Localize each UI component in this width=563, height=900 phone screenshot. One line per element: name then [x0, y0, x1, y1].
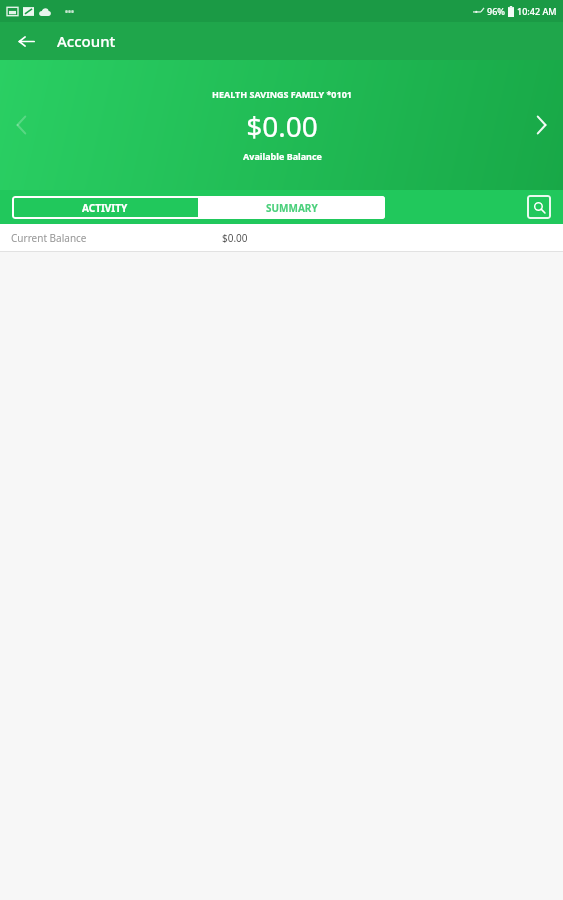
button[interactable]: Current Balance — [0, 224, 563, 251]
staticText: $0.00 — [246, 107, 318, 145]
staticText: 96% — [487, 5, 505, 17]
button[interactable]: SUMMARY — [198, 196, 385, 219]
staticText: HEALTH SAVINGS FAMILY *0101 — [212, 88, 352, 100]
staticText: ACTIVITY — [82, 201, 128, 215]
staticText: 10:42 AM — [517, 5, 557, 17]
staticText: Current Balance — [11, 231, 87, 245]
staticText: $0.00 — [222, 231, 248, 245]
button[interactable]: Next account — [523, 107, 559, 143]
staticText: Available Balance — [243, 150, 322, 162]
button[interactable]: Search — [527, 195, 551, 219]
staticText: ••• — [65, 6, 75, 17]
button[interactable]: ACTIVITY — [12, 196, 198, 219]
button[interactable]: Previous account — [4, 107, 40, 143]
staticText: SUMMARY — [266, 201, 318, 215]
button[interactable]: Back — [10, 25, 42, 57]
staticText: Account — [57, 31, 116, 51]
